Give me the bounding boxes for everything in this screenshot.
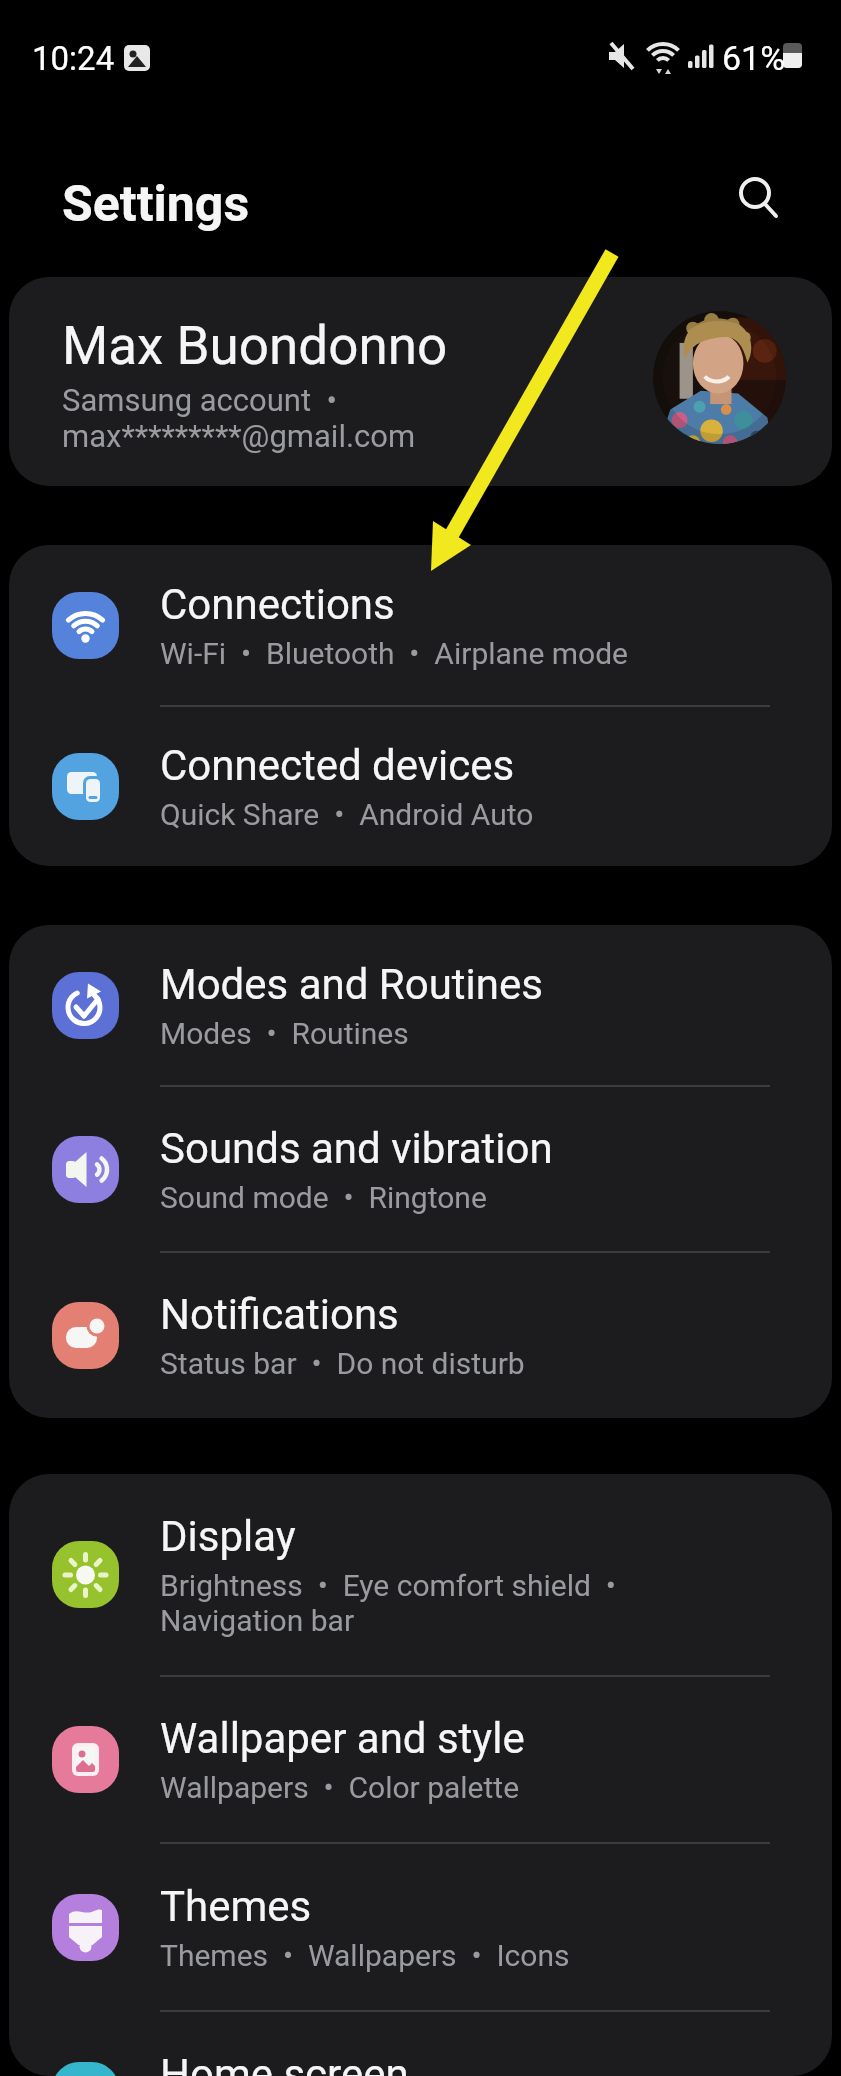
staticText: Notifications — [160, 1290, 399, 1339]
button[interactable]: Modes and Routines — [9, 925, 832, 1085]
staticText: Sound mode • Ringtone — [160, 1180, 487, 1215]
staticText: Display — [160, 1512, 296, 1561]
staticText: max*********@gmail.com — [62, 418, 416, 454]
button[interactable]: Notifications — [9, 1253, 832, 1418]
button[interactable]: Max Buondonno — [9, 277, 832, 486]
staticText: Sounds and vibration — [160, 1124, 553, 1173]
staticText: Status bar • Do not disturb — [160, 1346, 525, 1381]
button[interactable]: Wallpaper and style — [9, 1677, 832, 1842]
staticText: Quick Share • Android Auto — [160, 797, 534, 832]
staticText: Connections — [160, 580, 395, 629]
staticText: Modes and Routines — [160, 960, 543, 1009]
staticText: Settings — [62, 175, 250, 234]
staticText: Home screen — [160, 2050, 409, 2076]
button[interactable] — [9, 277, 832, 486]
staticText: Navigation bar — [160, 1603, 355, 1638]
button[interactable]: Display — [9, 1474, 832, 1675]
button[interactable]: Connected devices — [9, 707, 832, 866]
button[interactable] — [715, 156, 803, 244]
staticText: Wallpaper and style — [160, 1714, 525, 1763]
staticText: Wi-Fi • Bluetooth • Airplane mode — [160, 636, 629, 671]
button[interactable]: Home screen — [9, 2012, 832, 2076]
staticText: Wallpapers • Color palette — [160, 1770, 520, 1805]
staticText: Themes — [160, 1882, 312, 1931]
staticText: 61% — [722, 38, 786, 78]
staticText: Max Buondonno — [62, 315, 448, 377]
staticText: Connected devices — [160, 741, 515, 790]
button[interactable]: Themes — [9, 1844, 832, 2010]
staticText: Themes • Wallpapers • Icons — [160, 1938, 570, 1973]
staticText: Modes • Routines — [160, 1016, 409, 1051]
button[interactable]: Connections — [9, 545, 832, 705]
staticText: Samsung account • — [62, 382, 337, 418]
staticText: 10:24 — [32, 39, 115, 78]
button[interactable]: Sounds and vibration — [9, 1087, 832, 1251]
staticText: Brightness • Eye comfort shield • — [160, 1568, 616, 1603]
